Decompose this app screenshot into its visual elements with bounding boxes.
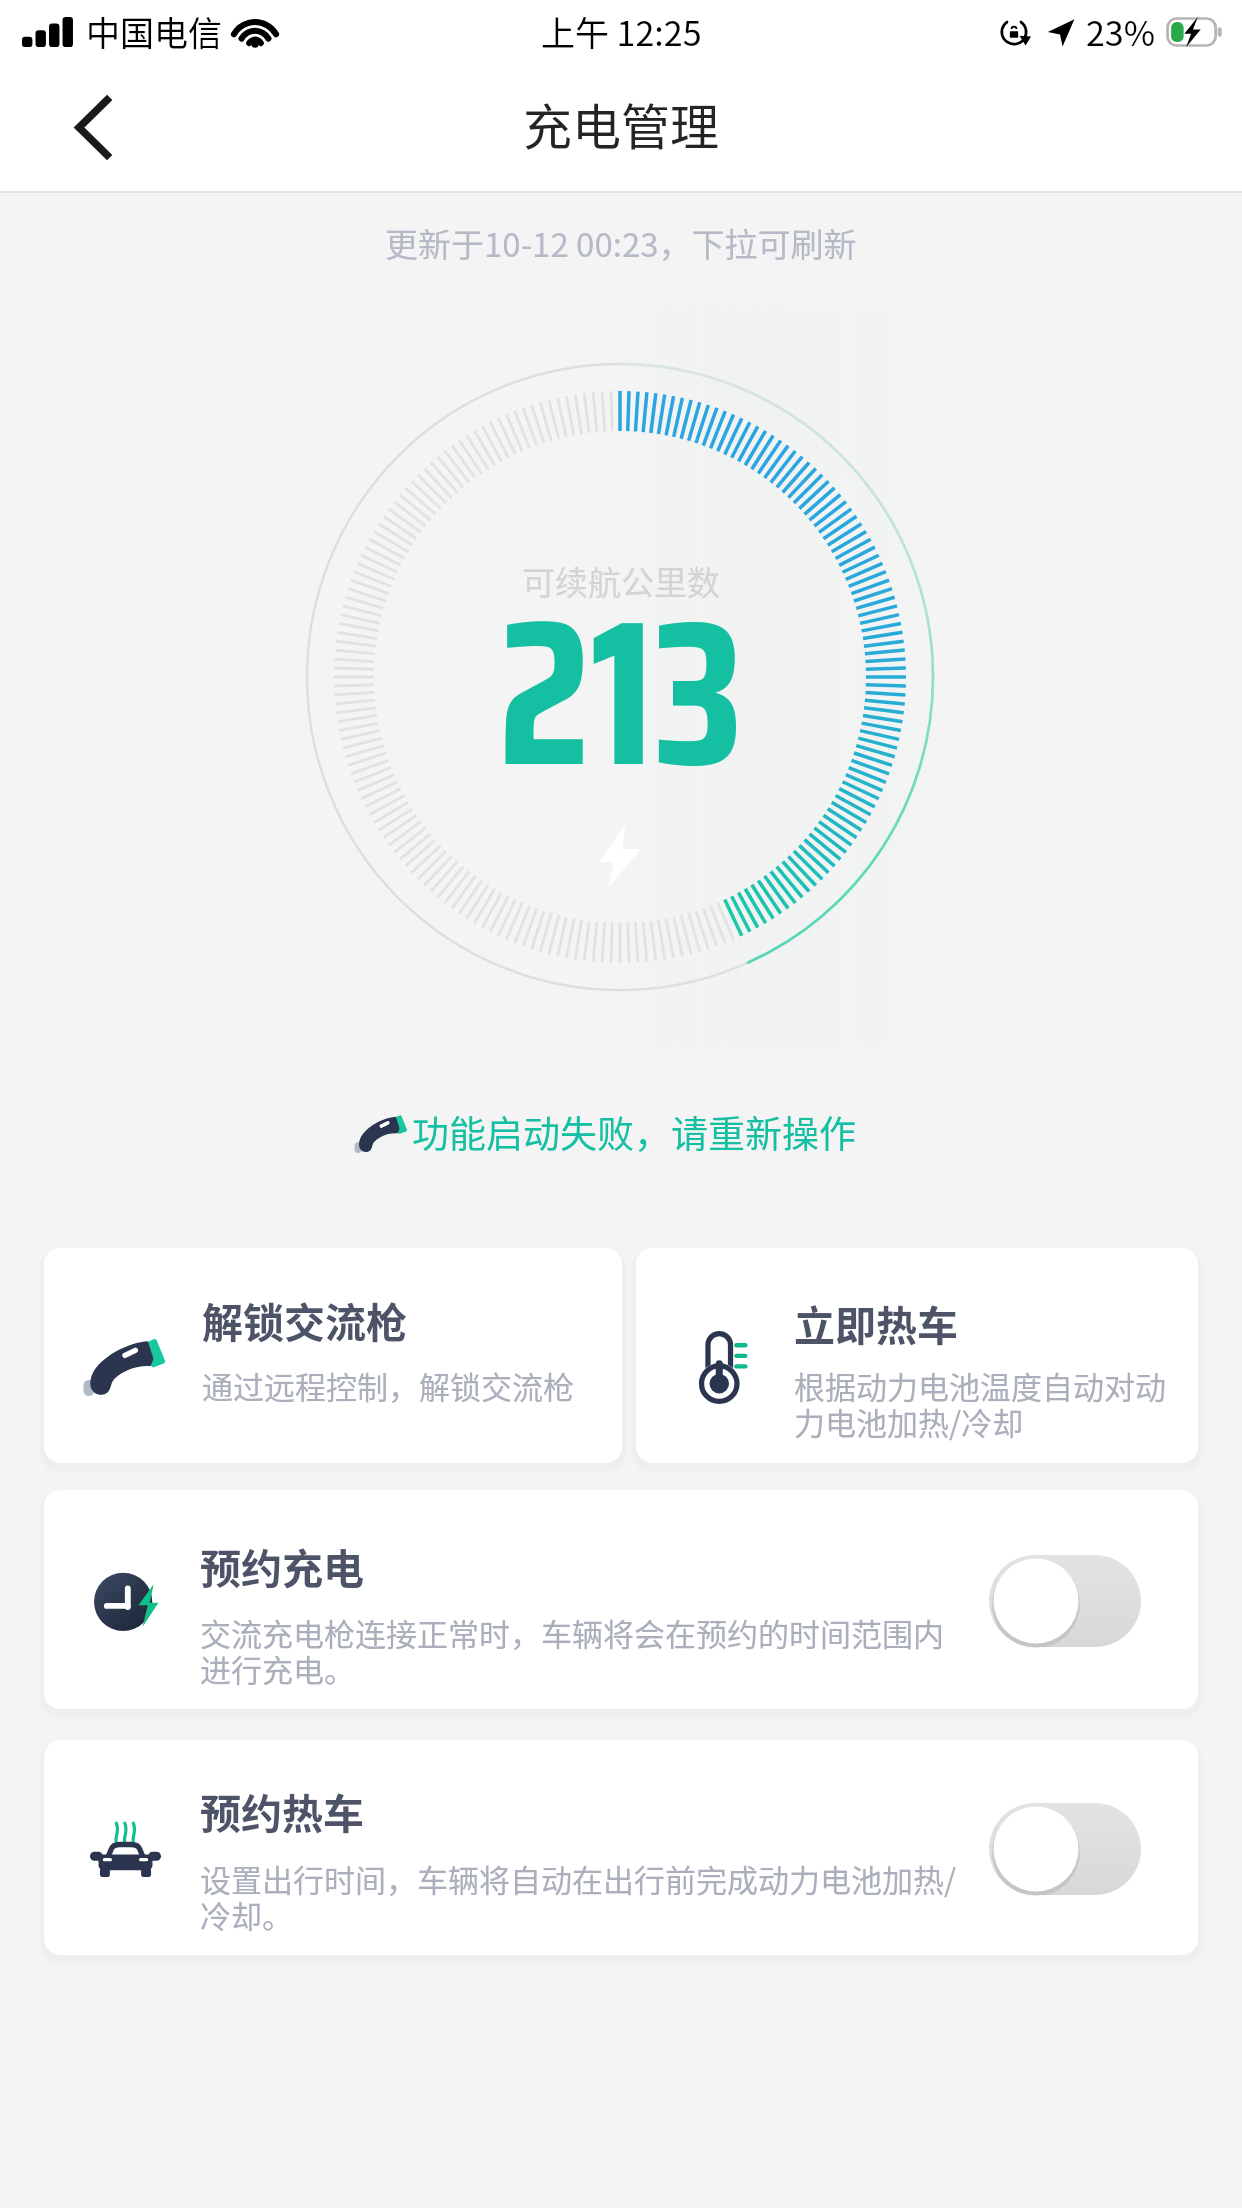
button[interactable]: 预约充电 (44, 1490, 1198, 1709)
staticText: 功能启动失败，请重新操作 (412, 1105, 856, 1159)
staticText: 通过远程控制，解锁交流枪 (202, 1363, 574, 1408)
button[interactable]: 预约充电开关 (989, 1555, 1141, 1647)
staticText: 可续航公里数 (522, 557, 720, 605)
staticText: 交流充电枪连接正常时，车辆将会在预约的时间范围内 进行充电。 (200, 1610, 944, 1691)
staticText: 充电管理 (523, 88, 720, 159)
staticText: 上午 12:25 (541, 7, 702, 56)
staticText: 预约热车 (200, 1781, 364, 1840)
button[interactable]: 预约热车 (44, 1740, 1198, 1955)
staticText: 中国电信 (86, 7, 222, 56)
staticText: 解锁交流枪 (202, 1290, 407, 1349)
staticText: 预约充电 (200, 1536, 364, 1595)
staticText: 根据动力电池温度自动对动 力电池加热/冷却 (794, 1363, 1166, 1444)
button[interactable]: 预约热车开关 (989, 1803, 1141, 1895)
staticText: 23% (1086, 7, 1156, 56)
staticText: 213 (498, 531, 744, 854)
staticText: 设置出行时间，车辆将自动在出行前完成动力电池加热/ 冷却。 (200, 1856, 957, 1937)
staticText: 立即热车 (794, 1293, 958, 1352)
button[interactable]: 立即热车 (636, 1248, 1198, 1463)
button[interactable]: 返回 (29, 63, 157, 191)
staticText: 更新于10-12 00:23，下拉可刷新 (385, 219, 857, 267)
button[interactable]: 解锁交流枪 (44, 1248, 622, 1463)
